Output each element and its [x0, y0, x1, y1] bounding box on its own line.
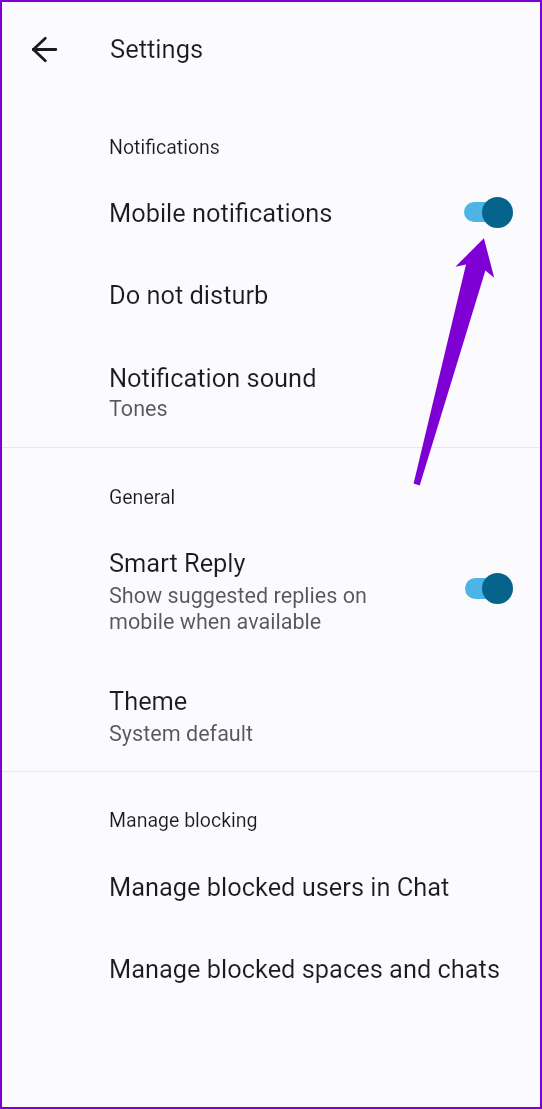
button[interactable]: Mobile notifications [0, 182, 542, 248]
staticText: Do not disturb [109, 280, 269, 310]
button[interactable]: Smart Reply [457, 564, 517, 612]
staticText: Notifications [109, 136, 220, 159]
staticText: Notification sound [109, 363, 317, 393]
button[interactable]: Manage blocked users in Chat [0, 860, 542, 926]
staticText: Tones [109, 396, 168, 421]
staticText: Smart Reply [109, 548, 246, 578]
button[interactable]: Manage blocked spaces and chats [0, 939, 542, 1005]
button[interactable]: Smart Reply [0, 534, 542, 644]
button[interactable]: Theme [0, 672, 542, 760]
staticText: General [109, 486, 176, 509]
button[interactable]: Back [20, 25, 68, 73]
staticText: Theme [109, 686, 188, 716]
button[interactable]: Mobile notifications [456, 188, 516, 236]
staticText: Manage blocked spaces and chats [109, 954, 501, 984]
staticText: mobile when available [109, 609, 322, 634]
button[interactable]: Notification sound [0, 347, 542, 433]
staticText: Settings [110, 34, 204, 64]
button[interactable]: Do not disturb [0, 264, 542, 330]
staticText: Show suggested replies on [109, 583, 367, 608]
staticText: System default [109, 721, 254, 746]
staticText: Manage blocking [109, 809, 258, 832]
staticText: Manage blocked users in Chat [109, 872, 450, 902]
staticText: Mobile notifications [109, 198, 333, 228]
